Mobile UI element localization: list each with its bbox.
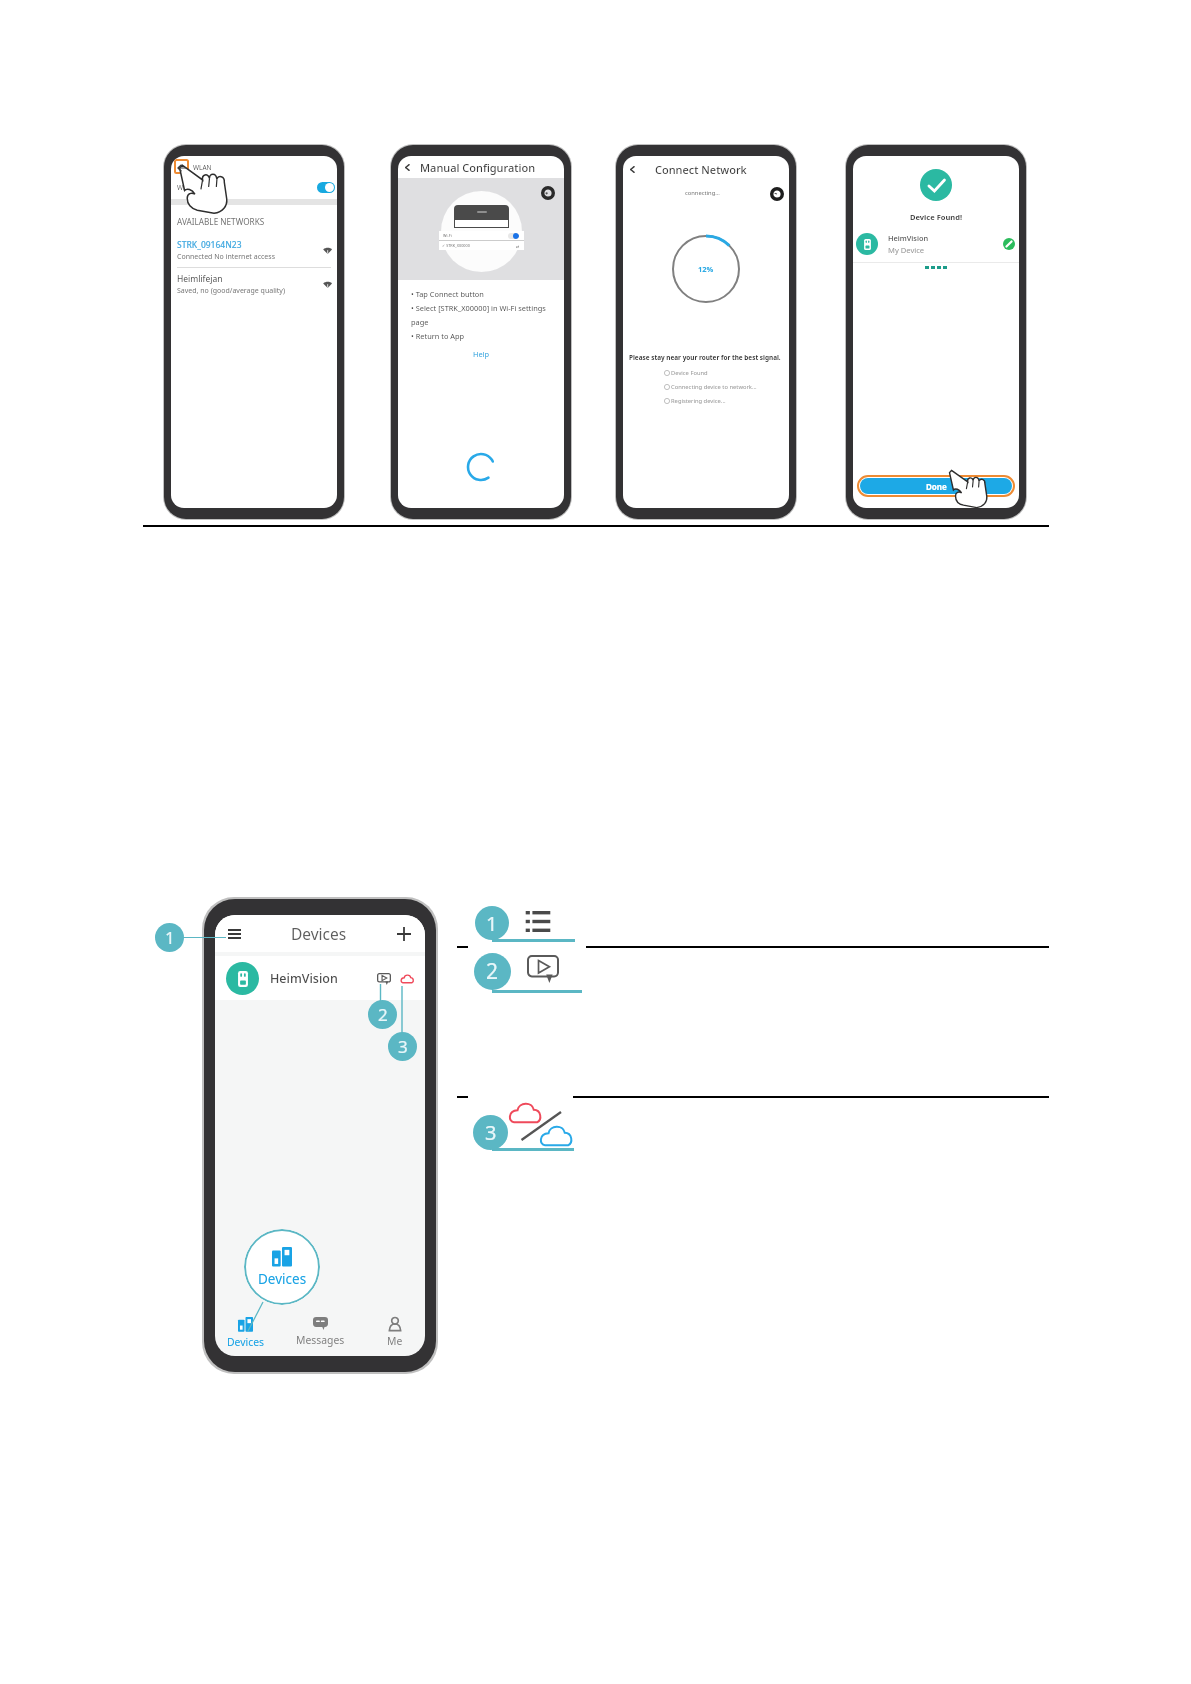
staticText: page (411, 317, 429, 327)
staticText: 2 (486, 957, 499, 986)
staticText: ✓ STRK_X00000 (442, 243, 470, 248)
button[interactable]: Menu (224, 924, 244, 944)
staticText: AVAILABLE NETWORKS (177, 216, 265, 227)
staticText: 1 (165, 926, 175, 949)
staticText: HeimVision (888, 233, 929, 243)
button[interactable]: Add device (394, 924, 414, 944)
staticText: Registering device... (671, 397, 726, 405)
staticText: Wi-Fi (443, 233, 452, 238)
staticText: Connect Network (655, 162, 747, 177)
staticText: 3 (398, 1035, 408, 1058)
staticText: • Return to App (411, 331, 465, 341)
staticText: 1 (486, 910, 498, 937)
staticText: Messages (296, 1333, 345, 1347)
staticText: STRK_09164N23 (177, 239, 242, 251)
button[interactable]: Help (540, 185, 555, 200)
button[interactable]: Me (365, 1312, 425, 1348)
staticText: Devices (258, 1270, 307, 1288)
staticText: Connected No internet access (177, 252, 276, 262)
staticText: Device Found! (910, 212, 963, 222)
staticText: HeimVision (270, 970, 338, 987)
staticText: Device Found (671, 369, 708, 377)
staticText: connecting... (685, 189, 720, 197)
button[interactable]: Back (628, 165, 637, 174)
button[interactable]: Done (860, 478, 1012, 494)
button[interactable]: HeimVision (856, 233, 1015, 255)
staticText: Devices (291, 923, 347, 944)
button[interactable]: Cloud offline (398, 970, 415, 987)
staticText: Me (387, 1334, 403, 1348)
staticText: Please stay near your router for the bes… (629, 353, 781, 362)
staticText: 12% (698, 264, 714, 274)
button[interactable]: Messages (276, 1312, 365, 1347)
staticText: Devices (227, 1335, 265, 1349)
button[interactable]: Info (769, 186, 784, 201)
staticText: Done (926, 481, 947, 492)
staticText: Heimlifejan (177, 273, 223, 285)
staticText: Manual Configuration (420, 160, 536, 175)
button[interactable]: HeimVision (215, 956, 425, 1000)
staticText: Connecting device to network... (671, 383, 757, 391)
staticText: • Tap Connect button (411, 289, 484, 299)
button[interactable]: Back (174, 159, 189, 174)
staticText: • Select [STRK_X00000] in Wi-Fi settings (411, 303, 546, 313)
button[interactable]: WLAN toggle (317, 182, 335, 193)
staticText: 2 (378, 1003, 388, 1026)
button[interactable]: Devices (215, 1312, 276, 1349)
staticText: ⇄ (516, 244, 520, 248)
staticText: WLAN (177, 183, 196, 192)
button[interactable]: Rename device (1003, 238, 1015, 250)
staticText: 3 (485, 1119, 497, 1146)
staticText: Saved, no (good/average quality) (177, 286, 285, 296)
button[interactable]: Help (398, 349, 564, 359)
button[interactable]: Playback (375, 970, 392, 987)
staticText: My Device (888, 245, 925, 255)
staticText: WLAN (193, 163, 212, 172)
